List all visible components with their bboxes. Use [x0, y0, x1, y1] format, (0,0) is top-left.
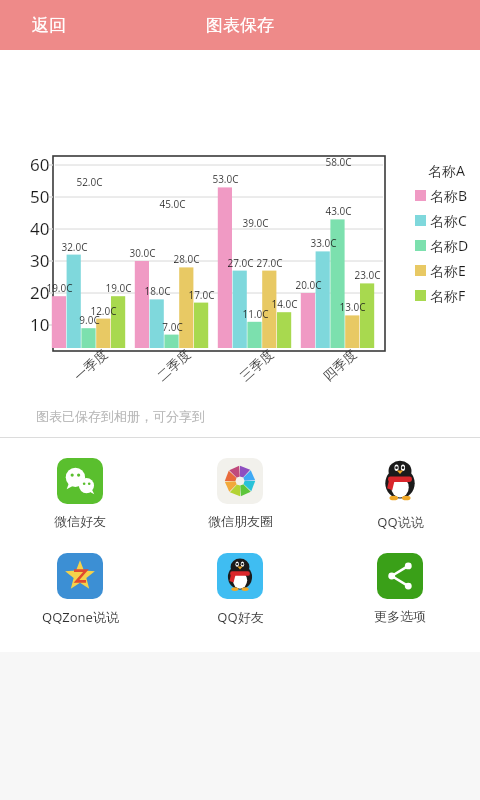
staticText: QQZone说说 — [42, 608, 119, 626]
staticText: 名称B — [430, 186, 468, 205]
staticText: 名称C — [430, 211, 467, 230]
button[interactable]: 返回 — [24, 9, 74, 42]
button[interactable]: 更多选项 — [320, 549, 480, 628]
staticText: 30.0C — [129, 246, 156, 260]
staticText: 18.0C — [144, 284, 171, 298]
staticText: 9.0C — [79, 313, 100, 327]
other: 微信朋友圈 — [217, 458, 263, 504]
staticText: 27.0C — [227, 256, 254, 270]
staticText: QQ说说 — [377, 513, 424, 531]
staticText: 13.0C — [339, 300, 366, 314]
staticText: 39.0C — [242, 216, 269, 230]
staticText: 微信朋友圈 — [208, 513, 273, 529]
staticText: 19.0C — [105, 281, 132, 295]
staticText: 40 — [30, 217, 50, 240]
staticText: 32.0C — [61, 240, 88, 254]
staticText: 30 — [30, 249, 50, 272]
staticText: 名称F — [430, 286, 466, 305]
staticText: 53.0C — [212, 172, 239, 186]
staticText: 名称E — [430, 261, 466, 280]
staticText: 50 — [30, 185, 50, 208]
staticText: 微信好友 — [54, 513, 106, 529]
staticText: 三季度 — [237, 346, 276, 384]
staticText: 14.0C — [271, 297, 298, 311]
staticText: 20 — [30, 281, 50, 304]
staticText: 28.0C — [173, 252, 200, 266]
other: QQZone说说 — [57, 553, 103, 599]
other: QQ好友 — [217, 553, 263, 599]
staticText: 名称A — [428, 161, 465, 180]
other: QQ说说 — [377, 458, 423, 504]
staticText: QQ好友 — [217, 608, 264, 626]
button[interactable]: QQ好友 — [160, 549, 320, 630]
other: 微信好友 — [57, 458, 103, 504]
staticText: 58.0C — [325, 155, 352, 169]
staticText: 33.0C — [310, 236, 337, 250]
staticText: 四季度 — [320, 346, 359, 384]
staticText: 20.0C — [295, 278, 322, 292]
staticText: 11.0C — [242, 307, 269, 321]
staticText: 二季度 — [154, 346, 193, 384]
staticText: 图表保存 — [206, 15, 274, 36]
other: 更多选项 — [377, 553, 423, 599]
staticText: 图表已保存到相册，可分享到 — [36, 408, 205, 424]
staticText: 7.0C — [162, 320, 183, 334]
staticText: 23.0C — [354, 268, 381, 282]
staticText: 52.0C — [76, 175, 103, 189]
staticText: 10 — [30, 313, 50, 336]
staticText: 19.0C — [46, 281, 73, 295]
button[interactable]: QQ说说 — [320, 454, 480, 535]
staticText: 名称D — [430, 236, 469, 255]
staticText: 返回 — [32, 15, 66, 36]
button[interactable]: QQZone说说 — [0, 549, 160, 630]
staticText: 12.0C — [90, 304, 117, 318]
button[interactable]: 微信好友 — [0, 454, 160, 533]
staticText: 一季度 — [71, 346, 110, 384]
staticText: 17.0C — [188, 288, 215, 302]
staticText: 43.0C — [325, 204, 352, 218]
staticText: 更多选项 — [374, 608, 426, 624]
staticText: 27.0C — [256, 256, 283, 270]
staticText: 45.0C — [159, 197, 186, 211]
staticText: 60 — [30, 153, 50, 176]
button[interactable]: 微信朋友圈 — [160, 454, 320, 533]
